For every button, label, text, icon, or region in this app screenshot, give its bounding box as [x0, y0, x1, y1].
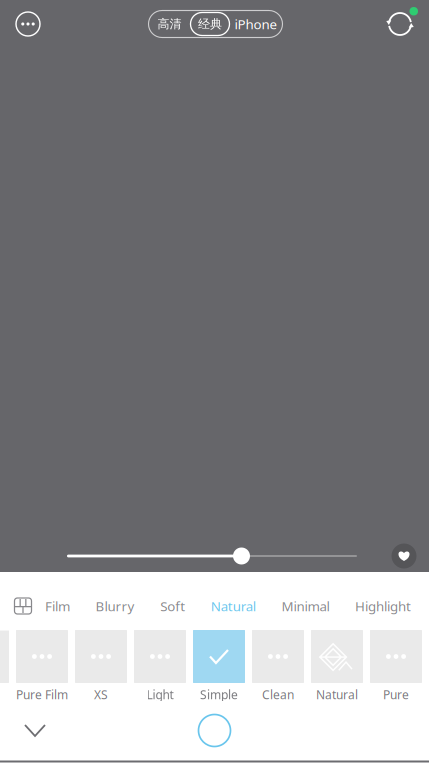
button[interactable]: Natural	[311, 630, 363, 701]
staticText: 高清	[157, 17, 181, 31]
button[interactable]: More options	[10, 6, 46, 42]
button[interactable]: Favourite	[391, 543, 417, 569]
staticText: Soft	[160, 597, 185, 615]
staticText: Film	[45, 597, 70, 615]
button[interactable]: 高清	[148, 10, 190, 37]
button[interactable]	[0, 630, 9, 701]
button[interactable]: Natural	[206, 570, 261, 630]
button[interactable]: Collapse filters	[13, 708, 57, 752]
button[interactable]: iPhone	[229, 10, 282, 37]
button[interactable]: Soft	[155, 570, 190, 630]
button[interactable]: All filters	[6, 570, 40, 630]
staticText: Pure Film	[16, 686, 68, 702]
button[interactable]: XS	[75, 630, 127, 701]
staticText: iPhone	[234, 15, 277, 33]
button[interactable]: Shutter	[187, 708, 241, 752]
button[interactable]: 经典	[190, 12, 229, 35]
staticText: Minimal	[281, 597, 329, 615]
staticText: Natural	[316, 686, 358, 702]
button[interactable]: Blurry	[91, 570, 140, 630]
button[interactable]: Light	[134, 630, 186, 701]
button[interactable]: Pure Film	[16, 630, 68, 701]
staticText: Pure	[383, 686, 409, 702]
staticText: Natural	[211, 597, 256, 615]
button[interactable]: Clean	[252, 630, 304, 701]
staticText: Light	[146, 686, 173, 702]
button[interactable]: Minimal	[276, 570, 334, 630]
staticText: XS	[94, 686, 108, 702]
staticText: 经典	[198, 17, 222, 31]
button[interactable]: Highlight	[350, 570, 416, 630]
staticText: Clean	[262, 686, 294, 702]
staticText: Simple	[200, 686, 238, 702]
button[interactable]: Simple	[193, 630, 245, 701]
button[interactable]: Switch camera	[385, 9, 415, 39]
staticText: Highlight	[355, 597, 411, 615]
button[interactable]: Pure	[370, 630, 422, 701]
staticText: Blurry	[96, 597, 135, 615]
button[interactable]: Film	[40, 570, 75, 630]
